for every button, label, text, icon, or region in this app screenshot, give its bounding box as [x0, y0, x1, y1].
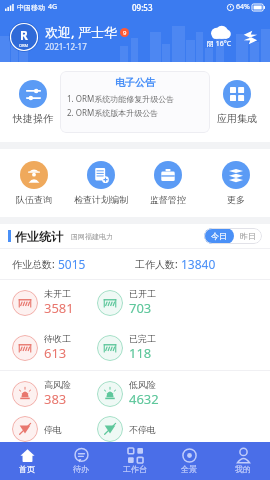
staticText: 更多 [227, 194, 245, 205]
staticText: 不停电 [129, 424, 156, 435]
staticText: 613 [44, 344, 67, 362]
button[interactable]: 监督管控 [134, 149, 202, 217]
staticText: 低风险 [129, 379, 156, 390]
staticText: 停电 [44, 424, 62, 435]
staticText: 队伍查询 [16, 194, 52, 205]
button[interactable]: 停电 [12, 416, 97, 442]
button[interactable]: 待收工 [12, 325, 97, 370]
button[interactable]: 检查计划编制 [67, 149, 134, 217]
button[interactable]: 快捷操作 [6, 62, 60, 142]
staticText: 2. ORM系统版本升级公告 [67, 107, 159, 118]
button[interactable]: 低风险 [97, 371, 182, 416]
staticText: 已完工 [129, 333, 156, 344]
staticText: 1. ORM系统功能修复升级公告 [67, 93, 175, 104]
staticText: 工作人数: [135, 257, 181, 271]
button[interactable]: 全景 [162, 442, 216, 480]
staticText: 电子公告 [67, 76, 203, 89]
button[interactable]: 工作台 [108, 442, 162, 480]
staticText: 64% [236, 2, 250, 12]
staticText: ORM [19, 43, 29, 48]
staticText: 监督管控 [150, 194, 186, 205]
button[interactable]: 待办 [54, 442, 108, 480]
button[interactable]: 昨日 [234, 228, 262, 244]
button[interactable]: 今日 [204, 228, 234, 244]
staticText: 昨日 [240, 231, 256, 241]
staticText: 检查计划编制 [74, 194, 128, 205]
staticText: 作业总数: [12, 257, 58, 271]
staticText: 阴 16°C [207, 39, 232, 49]
staticText: 未开工 [44, 288, 71, 299]
staticText: 欢迎, 严士华 [45, 23, 117, 41]
button[interactable]: 未开工 [12, 280, 97, 325]
button[interactable]: 已开工 [97, 280, 182, 325]
button[interactable]: 首页 [0, 442, 54, 480]
staticText: 9 [123, 29, 127, 37]
staticText: 国网福建电力 [71, 232, 113, 241]
button[interactable]: 已完工 [97, 325, 182, 370]
staticText: 工作台 [123, 464, 147, 474]
staticText: 快捷操作 [13, 112, 53, 125]
button[interactable]: Avatar [9, 22, 39, 52]
staticText: 我的 [235, 464, 251, 474]
staticText: 今日 [211, 231, 227, 241]
button[interactable]: 电子公告 [60, 71, 210, 133]
button[interactable]: Refresh [238, 25, 262, 49]
staticText: 383 [44, 390, 67, 408]
button[interactable]: 应用集成 [210, 62, 264, 142]
staticText: 118 [129, 344, 152, 362]
button[interactable]: 队伍查询 [0, 149, 67, 217]
staticText: 09:53 [132, 2, 153, 13]
button[interactable]: 我的 [216, 442, 270, 480]
button[interactable]: 不停电 [97, 416, 182, 442]
staticText: 2021-12-17 [45, 41, 87, 52]
staticText: 4632 [129, 390, 159, 408]
staticText: 高风险 [44, 379, 71, 390]
button[interactable]: 高风险 [12, 371, 97, 416]
staticText: 首页 [19, 464, 35, 474]
staticText: 13840 [181, 256, 216, 272]
staticText: 应用集成 [217, 112, 257, 125]
button[interactable]: 更多 [202, 149, 270, 217]
staticText: 703 [129, 299, 152, 317]
staticText: 中国移动 [17, 3, 45, 12]
staticText: 全景 [181, 464, 197, 474]
staticText: 待收工 [44, 333, 71, 344]
staticText: 作业统计 [15, 229, 63, 244]
staticText: R [20, 27, 28, 43]
staticText: 4G [48, 2, 58, 12]
staticText: 3581 [44, 299, 74, 317]
staticText: 已开工 [129, 288, 156, 299]
staticText: 待办 [73, 464, 89, 474]
staticText: 5015 [58, 256, 86, 272]
